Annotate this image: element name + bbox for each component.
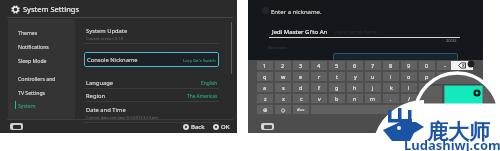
staticText: z: [264, 95, 267, 102]
button[interactable]: Date and Time: [84, 104, 219, 123]
staticText: OK: [221, 123, 230, 131]
button[interactable]: r: [311, 72, 327, 81]
button[interactable]: System: [8, 99, 75, 111]
button[interactable]: p: [419, 72, 435, 81]
button[interactable]: f: [311, 83, 327, 92]
staticText: u: [371, 73, 375, 80]
button[interactable]: Controllers and Sensors: [8, 72, 75, 84]
button[interactable]: s: [275, 83, 291, 92]
button[interactable]: g: [329, 83, 345, 92]
button[interactable]: n: [347, 94, 363, 103]
staticText: q: [263, 73, 267, 80]
button[interactable]: 7: [365, 61, 381, 70]
button[interactable]: !: [419, 94, 435, 103]
staticText: System Update: [86, 27, 128, 35]
staticText: f: [318, 84, 320, 91]
staticText: Ludashiwj.com: [404, 136, 500, 151]
staticText: /: [408, 95, 411, 102]
staticText: e: [299, 73, 303, 80]
staticText: @: [443, 73, 448, 80]
button[interactable]: Console Nickname: [84, 52, 219, 67]
button[interactable]: ◇: [275, 105, 291, 114]
button[interactable]: @: [437, 72, 453, 81]
button[interactable]: c: [293, 94, 309, 103]
button[interactable]: Console: [261, 123, 274, 130]
staticText: .: [390, 95, 392, 102]
button[interactable]: Back: [183, 123, 205, 131]
button[interactable]: e: [293, 72, 309, 81]
button[interactable]: Space: [311, 105, 449, 114]
staticText: s: [282, 84, 285, 91]
button[interactable]: 9: [401, 61, 417, 70]
staticText: 20/32: [446, 38, 457, 43]
button[interactable]: Console: [10, 123, 23, 130]
button[interactable]: System Update: [84, 25, 219, 44]
button[interactable]: :: [419, 83, 435, 92]
button[interactable]: y: [347, 72, 363, 81]
button[interactable]: 1: [257, 61, 273, 70]
button[interactable]: z: [257, 94, 273, 103]
button[interactable]: i: [383, 72, 399, 81]
button[interactable]: TV Settings: [8, 86, 75, 98]
button[interactable]: ⊕: [257, 105, 273, 114]
button[interactable]: OK: [213, 123, 230, 131]
button[interactable]: /: [401, 94, 417, 103]
button[interactable]: t: [329, 72, 345, 81]
button[interactable]: ;: [437, 83, 453, 92]
staticText: Region: [86, 92, 106, 100]
staticText: System: [18, 102, 36, 109]
button[interactable]: Backspace: [451, 61, 473, 70]
button[interactable]: d: [293, 83, 309, 92]
staticText: Language: [86, 79, 114, 87]
staticText: Notifications: [18, 43, 49, 50]
staticText: j: [372, 84, 374, 91]
staticText: k: [390, 84, 393, 91]
staticText: 1: [263, 62, 267, 69]
button[interactable]: 0: [419, 61, 435, 70]
button[interactable]: u: [365, 72, 381, 81]
button[interactable]: b: [329, 94, 345, 103]
button[interactable]: j: [365, 83, 381, 92]
staticText: Sleep Mode: [18, 57, 47, 64]
staticText: a: [263, 84, 267, 91]
button[interactable]: Notifications: [8, 40, 75, 52]
button[interactable]: 2: [275, 61, 291, 70]
button[interactable]: Themes: [8, 26, 75, 38]
button[interactable]: x: [275, 94, 291, 103]
staticText: Nickname: [268, 45, 287, 50]
staticText: c: [300, 95, 303, 102]
button[interactable]: 6: [347, 61, 363, 70]
staticText: d: [299, 84, 303, 91]
staticText: w: [281, 73, 286, 80]
staticText: #+=: [297, 107, 305, 113]
staticText: Lory Git's Switch: [183, 57, 216, 63]
staticText: i: [390, 73, 392, 80]
button[interactable]: q: [257, 72, 273, 81]
button[interactable]: Sleep Mode: [8, 54, 75, 66]
button[interactable]: w: [275, 72, 291, 81]
button[interactable]: -: [437, 61, 453, 70]
button[interactable]: Language: [84, 77, 219, 89]
button[interactable]: 5: [329, 61, 345, 70]
staticText: g: [335, 84, 339, 91]
button[interactable]: 8: [383, 61, 399, 70]
button[interactable]: v: [311, 94, 327, 103]
staticText: 0: [425, 62, 429, 69]
button[interactable]: a: [257, 83, 273, 92]
button[interactable]: Region: [84, 90, 219, 102]
button[interactable]: k: [383, 83, 399, 92]
staticText: Controllers and Sensors: [18, 75, 74, 82]
staticText: o: [407, 73, 411, 80]
button[interactable]: #+=: [293, 105, 309, 114]
button[interactable]: .: [383, 94, 399, 103]
button[interactable]: o: [401, 72, 417, 81]
button[interactable]: h: [347, 83, 363, 92]
staticText: y: [354, 73, 357, 80]
button[interactable]: 3: [293, 61, 309, 70]
button[interactable]: m: [365, 94, 381, 103]
button[interactable]: 4: [311, 61, 327, 70]
staticText: 鹿大师: [427, 119, 490, 145]
staticText: System Settings: [23, 4, 79, 14]
button[interactable]: l: [401, 83, 417, 92]
